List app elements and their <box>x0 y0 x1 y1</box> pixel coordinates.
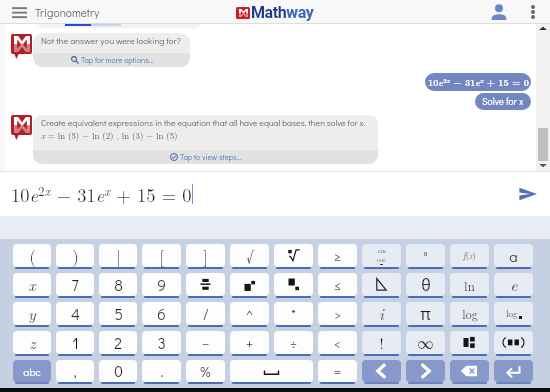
button[interactable]: More options <box>524 3 542 21</box>
button[interactable]: space <box>230 360 313 384</box>
staticText: a <box>509 246 518 266</box>
button[interactable]: / <box>186 302 225 327</box>
button[interactable]: ] <box>186 244 225 269</box>
button[interactable]: [ <box>142 244 181 269</box>
button[interactable]: 2 <box>99 331 137 356</box>
button[interactable]: ÷ <box>274 331 313 356</box>
button[interactable]: 0 <box>99 360 137 384</box>
button[interactable]: | <box>99 244 137 269</box>
button[interactable]: < <box>318 331 357 356</box>
button[interactable]: ≤ <box>318 273 357 298</box>
staticText: Tap to view steps... <box>180 152 242 162</box>
button[interactable]: a <box>494 244 533 269</box>
button[interactable]: 5 <box>99 302 137 327</box>
button[interactable]: ° <box>406 244 445 269</box>
button[interactable]: log <box>450 302 489 327</box>
staticText: 7 <box>71 275 79 295</box>
button[interactable]: 10e2x − 31ex + 15 = 0 <box>425 73 531 91</box>
button[interactable]: , <box>56 360 94 384</box>
button[interactable]: 1 <box>56 331 94 356</box>
staticText: Not the answer you were looking for? <box>41 35 181 47</box>
button[interactable]: sincos <box>362 244 401 269</box>
button[interactable]: del <box>450 360 489 384</box>
staticText: 1 <box>72 333 79 353</box>
button[interactable]: z <box>13 331 51 356</box>
staticText: log <box>462 305 478 322</box>
staticText: ! <box>379 332 384 353</box>
staticText: Create equivalent expressions in the equ… <box>41 117 366 128</box>
button[interactable]: 7 <box>56 273 94 298</box>
button[interactable]: ! <box>362 331 401 356</box>
staticText: | <box>116 244 121 267</box>
button[interactable]: 8 <box>99 273 137 298</box>
staticText: Trigonometry <box>35 5 100 20</box>
staticText: < <box>334 334 341 352</box>
button[interactable]: 6 <box>142 302 181 327</box>
button[interactable]: i <box>362 302 401 327</box>
button[interactable]: Tap for more options... <box>41 53 183 67</box>
button[interactable]: Solve for x <box>475 93 531 110</box>
staticText: x <box>28 273 36 296</box>
button[interactable]: 3 <box>142 331 181 356</box>
staticText: + <box>246 334 253 352</box>
button[interactable]: logb <box>494 302 533 327</box>
staticText: 10e2x − 31ex + 15 = 0 <box>428 76 529 89</box>
staticText: 9 <box>157 275 166 295</box>
button[interactable]: = <box>318 360 357 384</box>
staticText: * <box>291 305 296 323</box>
staticText: 3 <box>157 333 166 353</box>
button[interactable]: fx <box>450 244 489 269</box>
staticText: Solve for x <box>482 95 524 108</box>
button[interactable]: > <box>318 302 357 327</box>
button[interactable]: left <box>362 360 401 384</box>
button[interactable]: matrix <box>450 331 489 356</box>
button[interactable]: Send <box>514 180 542 208</box>
button[interactable]: ≥ <box>318 244 357 269</box>
staticText: θ <box>421 274 431 296</box>
staticText: f(x) <box>463 249 477 262</box>
button[interactable]: π <box>406 302 445 327</box>
staticText: ∞ <box>417 331 434 354</box>
button[interactable]: ^ <box>230 302 269 327</box>
button[interactable]: nroot <box>274 244 313 269</box>
staticText: ÷ <box>290 334 297 352</box>
button[interactable]: ∞ <box>406 331 445 356</box>
button[interactable]: ln <box>450 273 489 298</box>
staticText: z <box>29 331 36 354</box>
staticText: log <box>506 307 518 320</box>
button[interactable]: Account <box>487 0 511 24</box>
button[interactable]: sup <box>230 273 269 298</box>
button[interactable]: 4 <box>56 302 94 327</box>
staticText: 10e2x − 31ex + 15 = 0 <box>11 181 192 207</box>
button[interactable]: e <box>494 273 533 298</box>
button[interactable]: − <box>186 331 225 356</box>
button[interactable]: vector <box>494 331 533 356</box>
button[interactable]: abc <box>13 360 51 384</box>
button[interactable]: sub <box>274 273 313 298</box>
button[interactable]: % <box>186 360 225 384</box>
button[interactable]: * <box>274 302 313 327</box>
button[interactable]: Menu <box>8 1 30 23</box>
staticText: i <box>379 302 384 325</box>
staticText: 5 <box>114 304 123 324</box>
button[interactable]: angle <box>362 273 401 298</box>
button[interactable]: + <box>230 331 269 356</box>
button[interactable]: ( <box>13 244 51 269</box>
button[interactable]: √ <box>230 244 269 269</box>
staticText: ln <box>464 276 475 294</box>
staticText: ^ <box>246 305 253 323</box>
button[interactable]: θ <box>406 273 445 298</box>
button[interactable]: frac <box>186 273 225 298</box>
button[interactable]: . <box>142 360 181 384</box>
staticText: − <box>202 334 209 352</box>
button[interactable]: ) <box>56 244 94 269</box>
button[interactable]: 9 <box>142 273 181 298</box>
button[interactable]: y <box>13 302 51 327</box>
button[interactable]: Tap to view steps... <box>41 150 371 164</box>
button[interactable]: enter <box>494 360 533 384</box>
staticText: 6 <box>157 304 166 324</box>
staticText: π <box>420 303 431 325</box>
button[interactable]: x <box>13 273 51 298</box>
button[interactable]: right <box>406 360 445 384</box>
staticText: % <box>200 362 211 380</box>
